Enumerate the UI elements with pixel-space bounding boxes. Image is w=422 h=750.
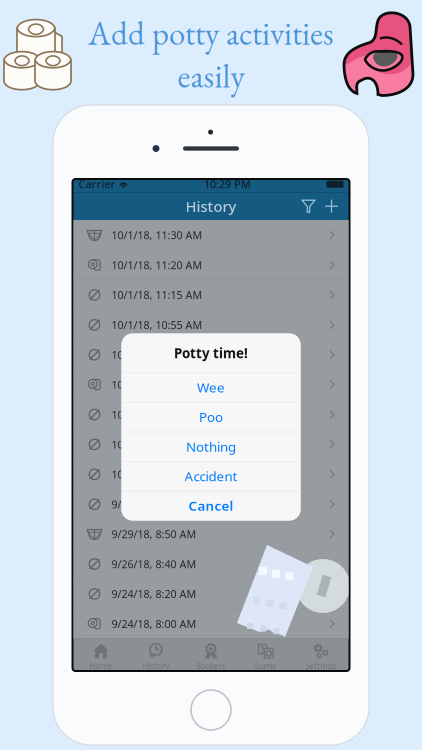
button[interactable]: 9/24/18, 8:00 AM bbox=[73, 609, 348, 639]
button[interactable]: Poo bbox=[121, 402, 300, 432]
button[interactable]: Game bbox=[238, 639, 293, 674]
button[interactable]: 10/1/18, 10:55 AM bbox=[73, 310, 348, 340]
button[interactable]: Stickers bbox=[183, 639, 238, 674]
button[interactable]: Nothing bbox=[121, 432, 300, 461]
button[interactable]: Add bbox=[320, 195, 342, 217]
staticText: 10/1/18, 11:15 AM bbox=[111, 288, 202, 302]
staticText: 10/1/18, 9:10 AM bbox=[111, 467, 196, 481]
staticText: 10/1/18, 11:30 AM bbox=[111, 228, 202, 242]
button[interactable]: 10/1/18, 9:30 AM bbox=[73, 429, 348, 459]
button[interactable]: Settings bbox=[293, 639, 348, 674]
staticText: 9/24/18, 8:20 AM bbox=[111, 587, 196, 601]
staticText: Cancel bbox=[188, 497, 233, 514]
staticText: 9/26/18, 8:40 AM bbox=[111, 557, 196, 571]
staticText: 10/1/18, 10:10 AM bbox=[111, 378, 202, 392]
staticText: 10/1/18, 11:20 AM bbox=[111, 258, 202, 272]
button[interactable]: 10/1/18, 11:20 AM bbox=[73, 250, 348, 280]
button[interactable]: Wee bbox=[121, 372, 300, 402]
button[interactable]: Filter bbox=[296, 195, 320, 217]
button[interactable]: History bbox=[128, 639, 183, 674]
button[interactable]: 10/1/18, 10:10 AM bbox=[73, 370, 348, 400]
staticText: 10:29 PM bbox=[204, 177, 251, 191]
staticText: 10/1/18, 10:55 AM bbox=[111, 318, 202, 332]
staticText: Settings bbox=[305, 661, 336, 671]
button[interactable]: 10/1/18, 11:30 AM bbox=[73, 220, 348, 250]
staticText: 10/1/18, 9:50 AM bbox=[111, 407, 196, 422]
staticText: History bbox=[185, 196, 236, 216]
staticText: Carrier bbox=[78, 177, 115, 191]
staticText: 10/1/18, 10:30 AM bbox=[111, 348, 202, 362]
button[interactable]: 9/24/18, 8:20 AM bbox=[73, 579, 348, 609]
staticText: Add potty activities bbox=[88, 12, 334, 54]
button[interactable]: Home bbox=[73, 639, 128, 674]
button[interactable]: 9/30/18, 9:00 AM bbox=[73, 489, 348, 519]
staticText: 9/30/18, 9:00 AM bbox=[111, 497, 196, 511]
staticText: Nothing bbox=[186, 438, 236, 455]
staticText: Potty time! bbox=[174, 344, 248, 362]
button[interactable]: 10/1/18, 11:15 AM bbox=[73, 280, 348, 310]
button[interactable]: 10/1/18, 10:30 AM bbox=[73, 340, 348, 370]
staticText: 10/1/18, 9:30 AM bbox=[111, 437, 196, 452]
staticText: Game bbox=[255, 661, 277, 671]
button[interactable]: Cancel bbox=[121, 491, 300, 520]
staticText: Home bbox=[89, 661, 112, 671]
staticText: Accident bbox=[184, 467, 237, 485]
staticText: Wee bbox=[197, 378, 225, 396]
staticText: easily bbox=[177, 54, 244, 97]
staticText: 9/24/18, 8:00 AM bbox=[111, 617, 196, 631]
button[interactable]: Accident bbox=[121, 461, 300, 491]
button[interactable]: 10/1/18, 9:50 AM bbox=[73, 400, 348, 429]
staticText: 9/29/18, 8:50 AM bbox=[111, 527, 196, 541]
button[interactable]: 9/26/18, 8:40 AM bbox=[73, 549, 348, 579]
button[interactable]: 9/29/18, 8:50 AM bbox=[73, 519, 348, 549]
staticText: Poo bbox=[199, 408, 223, 426]
button[interactable]: 10/1/18, 9:10 AM bbox=[73, 459, 348, 489]
staticText: History bbox=[142, 661, 169, 671]
staticText: Stickers bbox=[196, 661, 225, 671]
